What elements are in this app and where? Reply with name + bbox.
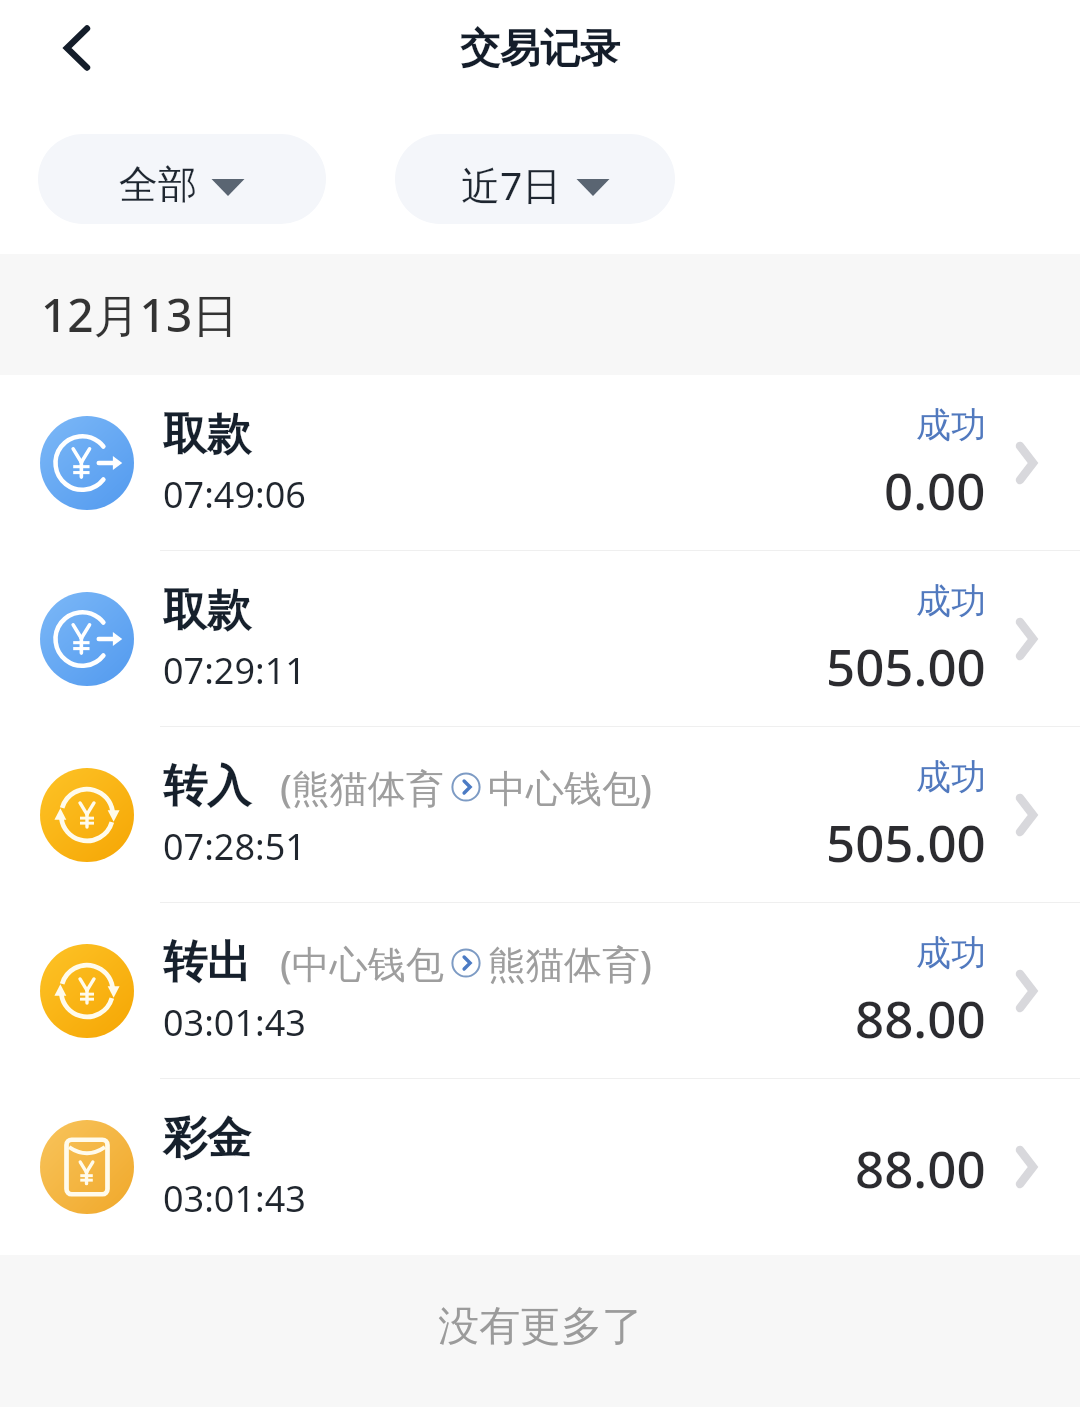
staticText: (中心钱包 (280, 937, 444, 989)
staticText: 07:28:51 (163, 822, 306, 871)
staticText: 全部 (119, 160, 197, 209)
staticText: 成功 (916, 931, 986, 975)
button[interactable]: 取款 (0, 551, 1080, 727)
staticText: (熊猫体育 (280, 761, 444, 813)
staticText: 中心钱包) (488, 761, 652, 813)
staticText: 熊猫体育) (488, 937, 652, 989)
button[interactable]: Back (28, 0, 124, 96)
staticText: 88.00 (855, 983, 986, 1052)
staticText: 505.00 (826, 807, 986, 876)
staticText: 取款 (163, 407, 251, 462)
staticText: 12月13日 (41, 283, 239, 346)
staticText: 没有更多了 (438, 1301, 643, 1353)
staticText: 07:49:06 (163, 470, 306, 519)
staticText: 近7日 (461, 158, 562, 211)
staticText: 成功 (916, 403, 986, 447)
staticText: 转入 (163, 759, 251, 814)
button[interactable]: 近7日 (395, 134, 675, 224)
staticText: 彩金 (163, 1111, 251, 1166)
staticText: 转出 (163, 935, 251, 990)
staticText: 03:01:43 (163, 1174, 306, 1223)
staticText: 0.00 (884, 455, 986, 524)
button[interactable]: 全部 (38, 134, 326, 224)
staticText: 03:01:43 (163, 998, 306, 1047)
staticText: 成功 (916, 755, 986, 799)
button[interactable]: 取款 (0, 375, 1080, 551)
button[interactable]: 转出 (0, 903, 1080, 1079)
staticText: 成功 (916, 579, 986, 623)
button[interactable]: 彩金 (0, 1079, 1080, 1255)
button[interactable]: 转入 (0, 727, 1080, 903)
staticText: 505.00 (826, 631, 986, 700)
staticText: 88.00 (855, 1133, 986, 1202)
staticText: 交易记录 (460, 23, 620, 73)
staticText: 取款 (163, 583, 251, 638)
staticText: 07:29:11 (163, 646, 306, 695)
